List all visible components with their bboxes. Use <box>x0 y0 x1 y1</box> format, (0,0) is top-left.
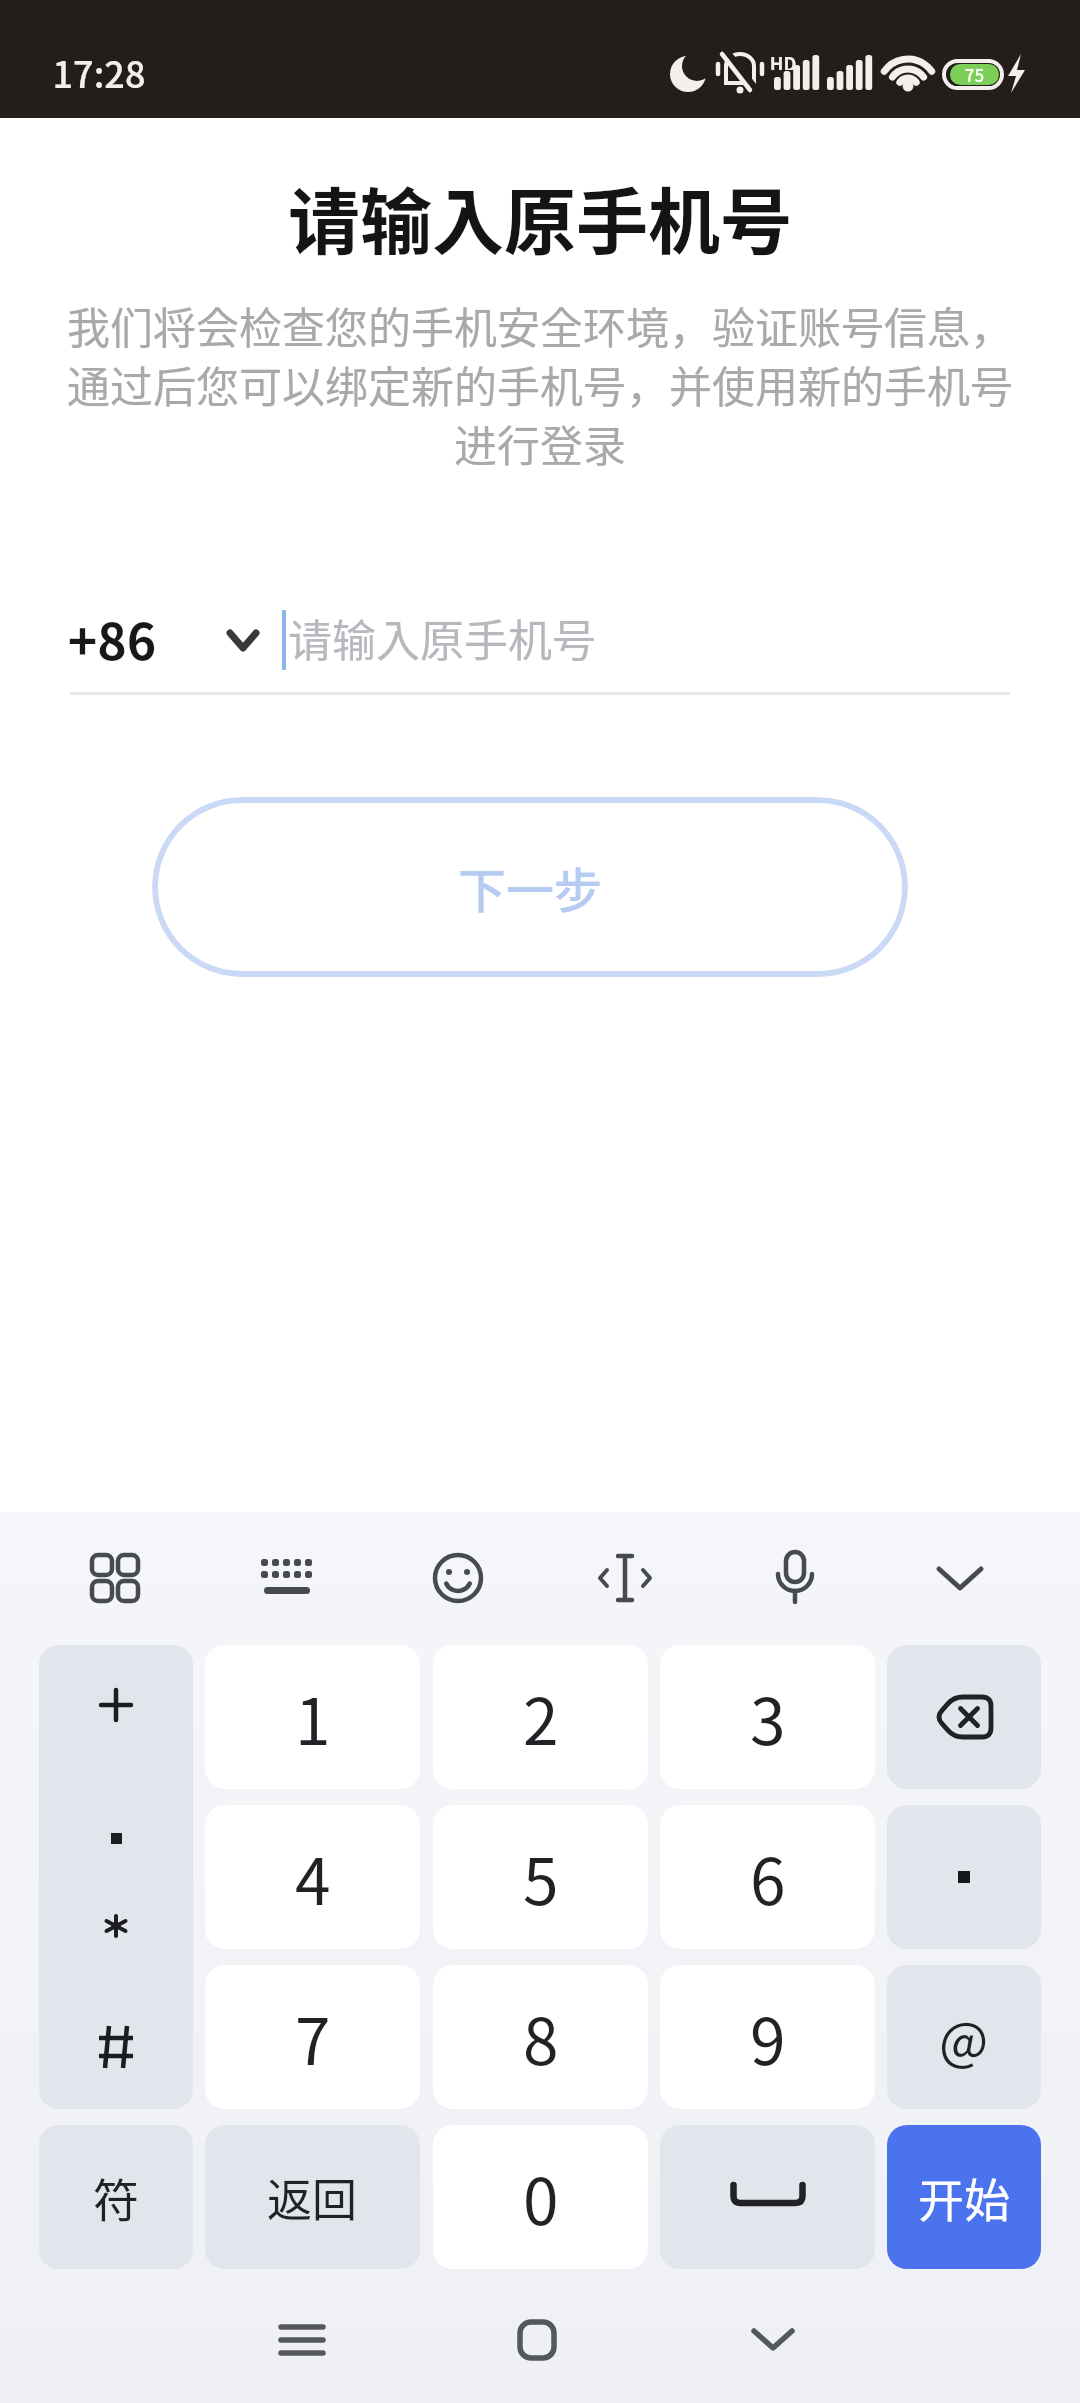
staticText: 3 <box>750 1671 786 1764</box>
button[interactable]: @ <box>887 1965 1041 2109</box>
button[interactable] <box>599 1552 651 1604</box>
staticText: HD <box>764 50 802 70</box>
staticText: 75 <box>950 62 999 87</box>
button[interactable] <box>887 1805 1041 1949</box>
button[interactable]: 5 <box>433 1805 648 1949</box>
button[interactable]: 符 <box>39 2125 193 2269</box>
staticText: 请输入原手机号 <box>0 164 1080 268</box>
button[interactable]: 1 <box>205 1645 420 1789</box>
button[interactable] <box>887 1645 1041 1789</box>
button[interactable] <box>751 2327 795 2353</box>
button[interactable] <box>89 1552 141 1604</box>
button[interactable]: 3 <box>660 1645 875 1789</box>
button[interactable]: 4 <box>205 1805 420 1949</box>
button[interactable]: +86 <box>54 598 170 678</box>
button[interactable] <box>517 2319 557 2361</box>
staticText: 2 <box>523 1671 559 1764</box>
button[interactable] <box>660 2125 875 2269</box>
button[interactable] <box>281 2319 323 2361</box>
staticText: 7 <box>295 1991 331 2084</box>
button[interactable] <box>39 1645 193 2109</box>
button[interactable]: 下一步 <box>152 797 908 977</box>
staticText: 6 <box>750 1831 786 1924</box>
staticText: 9 <box>750 1991 786 2084</box>
staticText: 4 <box>295 1831 331 1924</box>
button[interactable]: 7 <box>205 1965 420 2109</box>
button[interactable]: 2 <box>433 1645 648 1789</box>
staticText: 5 <box>523 1831 559 1924</box>
button[interactable]: 9 <box>660 1965 875 2109</box>
staticText: 0 <box>523 2151 559 2244</box>
button[interactable] <box>934 1564 986 1594</box>
staticText: 开始 <box>918 2164 1010 2231</box>
button[interactable]: 8 <box>433 1965 648 2109</box>
button[interactable] <box>259 1556 315 1602</box>
button[interactable]: 开始 <box>887 2125 1041 2269</box>
staticText: 我们将会检查您的手机安全环境，验证账号信息， 通过后您可以绑定新的手机号，并使用… <box>0 294 1080 475</box>
button[interactable]: 6 <box>660 1805 875 1949</box>
staticText: 符 <box>93 2164 139 2231</box>
staticText: +86 <box>54 602 170 674</box>
staticText: 17:28 <box>39 46 159 98</box>
staticText: @ <box>939 2000 989 2075</box>
button[interactable]: 0 <box>433 2125 648 2269</box>
staticText: 8 <box>523 1991 559 2084</box>
button[interactable] <box>769 1550 821 1606</box>
staticText: 下一步 <box>458 852 603 922</box>
button[interactable] <box>432 1552 484 1604</box>
staticText: 返回 <box>267 2165 358 2230</box>
staticText: 1 <box>295 1671 331 1764</box>
button[interactable]: 返回 <box>205 2125 420 2269</box>
staticText: 请输入原手机号 <box>288 606 618 670</box>
button[interactable] <box>226 626 260 654</box>
